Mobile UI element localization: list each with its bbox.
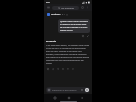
button[interactable]: Back — [79, 95, 84, 100]
button[interactable]: Recent apps — [52, 95, 57, 100]
button[interactable]: Add attachment — [47, 88, 51, 92]
staticText: 9:41 — [46, 1, 51, 4]
button[interactable]: Copy — [81, 34, 85, 38]
button[interactable]: Quiero saber cómo funciona el sistema de… — [58, 19, 90, 33]
button[interactable]: ChatGPT — [46, 12, 69, 17]
button[interactable]: Add attachment — [46, 87, 90, 93]
button[interactable]: Share — [66, 67, 70, 71]
staticText: Quiero saber cómo funciona el sistema de… — [60, 20, 88, 32]
staticText: Ask anything — [61, 7, 74, 10]
button[interactable]: Regenerate — [71, 67, 75, 71]
button[interactable]: More options — [85, 5, 90, 10]
button[interactable]: Home — [66, 95, 71, 100]
button[interactable]: New chat — [80, 5, 85, 10]
staticText: 5.1 — [62, 13, 65, 16]
button[interactable]: Read aloud — [61, 67, 65, 71]
button[interactable]: Good response — [51, 67, 55, 71]
button[interactable]: Dictate — [80, 88, 84, 92]
button[interactable]: Edit — [86, 34, 90, 38]
button[interactable]: Voice mode — [85, 88, 89, 92]
button[interactable]: Bad response — [56, 67, 60, 71]
button[interactable]: Ask anything — [52, 6, 79, 10]
staticText: ChatGPT — [51, 13, 61, 16]
staticText: Preguntar lo que quieras — [52, 89, 80, 92]
staticText: A un nivel muy básico, un sistema solar … — [46, 44, 90, 65]
button[interactable]: Menu — [46, 5, 51, 10]
staticText: En efecto — [46, 40, 57, 43]
button[interactable]: Copy — [46, 67, 50, 71]
